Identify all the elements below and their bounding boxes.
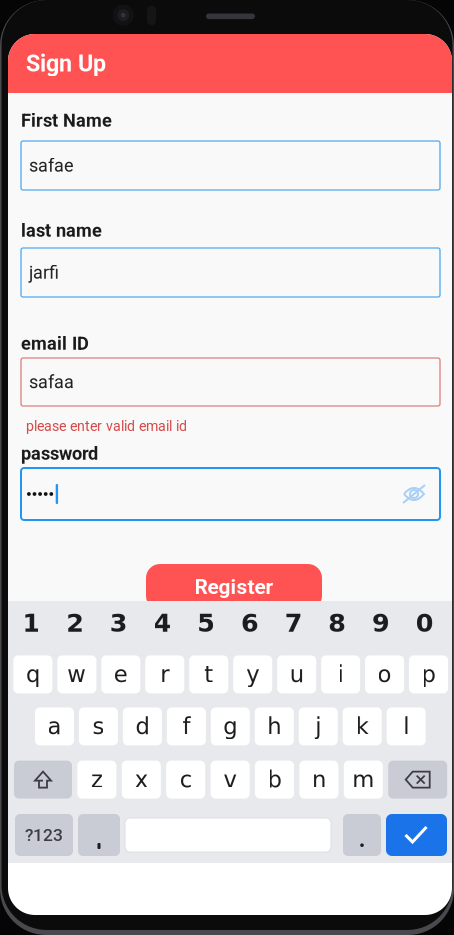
- button[interactable]: Shift: [14, 761, 72, 799]
- staticText: safaa: [29, 371, 74, 393]
- button[interactable]: j: [299, 707, 338, 745]
- button[interactable]: 1: [10, 603, 53, 643]
- button[interactable]: g: [211, 707, 250, 745]
- button[interactable]: i: [321, 655, 360, 693]
- staticText: jarfi: [29, 262, 59, 283]
- button[interactable]: e: [101, 655, 140, 693]
- button[interactable]: r: [145, 655, 184, 693]
- button[interactable]: a: [35, 707, 74, 745]
- staticText: o: [378, 661, 392, 688]
- staticText: s: [92, 713, 104, 740]
- button[interactable]: u: [277, 655, 316, 693]
- button[interactable]: Backspace: [388, 761, 447, 799]
- button[interactable]: 4: [141, 603, 184, 643]
- staticText: 4: [154, 608, 172, 638]
- button[interactable]: k: [343, 707, 382, 745]
- staticText: email ID: [21, 333, 89, 354]
- button[interactable]: 6: [228, 603, 272, 643]
- staticText: y: [246, 661, 259, 688]
- staticText: h: [267, 713, 281, 740]
- button[interactable]: 5: [184, 603, 228, 643]
- button[interactable]: t: [189, 655, 228, 693]
- staticText: e: [114, 661, 128, 688]
- button[interactable]: p: [409, 655, 448, 693]
- button[interactable]: Enter: [386, 814, 447, 856]
- staticText: a: [47, 713, 61, 740]
- button[interactable]: Register: [146, 564, 322, 610]
- button[interactable]: ?123: [15, 814, 73, 856]
- button[interactable]: v: [211, 761, 250, 799]
- button[interactable]: m: [344, 761, 383, 799]
- staticText: Sign Up: [26, 50, 106, 77]
- staticText: 2: [66, 608, 84, 638]
- staticText: please enter valid email id: [26, 418, 187, 435]
- button[interactable]: c: [166, 761, 205, 799]
- button[interactable]: 8: [315, 603, 359, 643]
- staticText: safae: [29, 155, 74, 176]
- button[interactable]: b: [255, 761, 294, 799]
- button[interactable]: Space: [125, 818, 331, 852]
- button[interactable]: 2: [53, 603, 97, 643]
- button[interactable]: Period: [343, 814, 381, 856]
- staticText: First Name: [21, 110, 112, 131]
- staticText: password: [21, 443, 98, 464]
- button[interactable]: y: [233, 655, 272, 693]
- button[interactable]: 7: [272, 603, 315, 643]
- button[interactable]: f: [167, 707, 206, 745]
- staticText: ?123: [25, 825, 63, 845]
- button[interactable]: w: [57, 655, 96, 693]
- staticText: z: [91, 766, 103, 793]
- button[interactable]: z: [77, 761, 116, 799]
- staticText: g: [223, 713, 237, 740]
- staticText: 1: [22, 608, 40, 638]
- staticText: b: [267, 766, 281, 793]
- staticText: 6: [241, 608, 259, 638]
- staticText: j: [315, 713, 321, 740]
- button[interactable]: s: [79, 707, 118, 745]
- staticText: t: [204, 661, 213, 688]
- button[interactable]: l: [387, 707, 426, 745]
- staticText: 9: [372, 608, 390, 638]
- staticText: 0: [416, 608, 434, 638]
- button[interactable]: x: [122, 761, 161, 799]
- staticText: r: [160, 661, 169, 688]
- staticText: d: [135, 713, 149, 740]
- button[interactable]: d: [123, 707, 162, 745]
- staticText: 5: [197, 608, 215, 638]
- staticText: q: [26, 661, 40, 688]
- staticText: p: [421, 661, 435, 688]
- staticText: last name: [21, 220, 102, 241]
- button[interactable]: n: [299, 761, 338, 799]
- button[interactable]: Comma: [78, 814, 120, 856]
- staticText: n: [312, 766, 326, 793]
- staticText: x: [135, 766, 148, 793]
- staticText: m: [352, 766, 374, 793]
- staticText: Register: [194, 575, 273, 599]
- button[interactable]: 0: [403, 603, 447, 643]
- staticText: u: [290, 661, 304, 688]
- staticText: i: [338, 661, 344, 688]
- staticText: v: [224, 766, 237, 793]
- staticText: 7: [285, 608, 303, 638]
- button[interactable]: q: [13, 655, 52, 693]
- staticText: f: [182, 713, 190, 740]
- button[interactable]: o: [365, 655, 404, 693]
- button[interactable]: 3: [97, 603, 141, 643]
- button[interactable]: 9: [359, 603, 403, 643]
- button[interactable]: h: [255, 707, 294, 745]
- staticText: 8: [328, 608, 346, 638]
- staticText: 3: [110, 608, 128, 638]
- staticText: c: [180, 766, 192, 793]
- staticText: l: [403, 713, 409, 740]
- staticText: k: [356, 713, 369, 740]
- staticText: w: [67, 661, 86, 688]
